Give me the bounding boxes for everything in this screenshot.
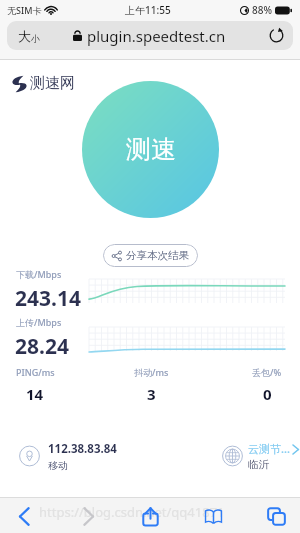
button[interactable]: Tabs — [262, 497, 290, 533]
button[interactable]: 112.38.83.84 — [48, 441, 117, 472]
staticText: https://blog.csdn.net/qq41871 — [39, 503, 225, 521]
button[interactable]: 分享本次结果 — [103, 244, 198, 267]
button[interactable]: 云测节... — [248, 441, 290, 471]
button[interactable]: 抖动/ms — [121, 366, 181, 404]
staticText: plugin.speedtest.cn — [87, 26, 226, 46]
button[interactable]: Forward — [74, 497, 102, 533]
staticText: 分享本次结果 — [126, 249, 189, 262]
staticText: 28.24 — [15, 332, 69, 361]
button[interactable]: Reload — [265, 21, 287, 50]
staticText: 移动 — [48, 459, 68, 472]
staticText: 88% — [252, 3, 272, 17]
staticText: PING/ms — [16, 366, 55, 378]
staticText: 3 — [147, 384, 156, 404]
staticText: 112.38.83.84 — [48, 441, 117, 457]
staticText: 小 — [31, 33, 40, 44]
button[interactable]: 测速 — [82, 81, 219, 218]
staticText: 测速 — [126, 134, 176, 165]
staticText: 云测节... — [248, 441, 290, 456]
staticText: 无SIM卡 — [7, 4, 42, 16]
staticText: 下载/Mbps — [16, 268, 62, 280]
button[interactable]: PING/ms — [5, 366, 65, 404]
button[interactable]: Share — [136, 497, 164, 533]
button[interactable]: Bookmarks — [199, 497, 227, 533]
staticText: 抖动/ms — [134, 366, 169, 378]
staticText: 上午11:55 — [125, 3, 171, 17]
staticText: 14 — [26, 384, 44, 404]
staticText: 0 — [263, 384, 272, 404]
staticText: 丢包/% — [252, 366, 282, 378]
staticText: 测速网 — [30, 74, 75, 93]
staticText: 243.14 — [15, 284, 81, 313]
staticText: 大 — [18, 28, 31, 44]
button[interactable]: 丢包/% — [237, 366, 297, 404]
staticText: 临沂 — [248, 458, 269, 471]
staticText: 上传/Mbps — [16, 316, 62, 328]
button[interactable]: 大 — [18, 28, 40, 44]
button[interactable]: Back — [10, 497, 38, 533]
button[interactable]: 测速网 — [12, 74, 75, 93]
